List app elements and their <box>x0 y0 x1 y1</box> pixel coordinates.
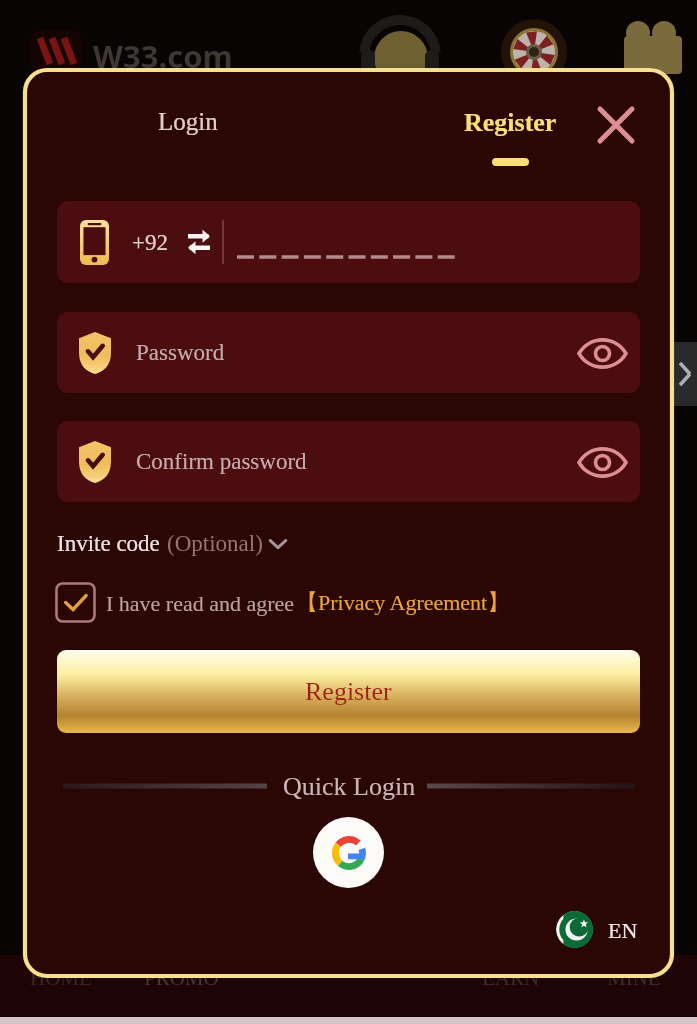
staticText: W33.com <box>93 35 233 77</box>
staticText: HOME <box>30 966 92 989</box>
staticText: Login <box>158 108 218 136</box>
button[interactable]: Toggle password visibility <box>576 436 628 488</box>
staticText: Confirm password <box>136 449 307 474</box>
staticText: I have read and agree <box>106 591 295 615</box>
button[interactable]: Close <box>589 97 643 151</box>
staticText: EN <box>608 918 638 942</box>
button[interactable]: Register <box>444 94 577 180</box>
staticText: +92 <box>132 230 168 255</box>
button[interactable]: Confirm password <box>57 421 640 502</box>
button[interactable]: Register <box>57 650 640 733</box>
button[interactable]: Sign in with Google <box>313 817 384 888</box>
staticText: Register <box>305 677 392 706</box>
staticText: EARN <box>482 966 540 989</box>
button[interactable]: I have read and agree <box>47 574 518 631</box>
staticText: Password <box>136 340 225 365</box>
staticText: Quick Login <box>283 772 416 801</box>
button[interactable]: Password <box>57 312 640 393</box>
button[interactable]: +92 <box>57 201 640 283</box>
staticText: 【Privacy Agreement】 <box>296 589 510 617</box>
button[interactable]: Invite code <box>49 523 295 564</box>
button[interactable]: Login <box>138 94 238 150</box>
button[interactable]: Toggle password visibility <box>576 327 628 379</box>
staticText: (Optional) <box>167 531 263 556</box>
staticText: Invite code <box>57 531 160 556</box>
button[interactable]: EN <box>548 903 646 956</box>
staticText: Register <box>464 108 557 137</box>
staticText: MINE <box>607 966 661 989</box>
staticText: PROMO <box>144 966 219 989</box>
